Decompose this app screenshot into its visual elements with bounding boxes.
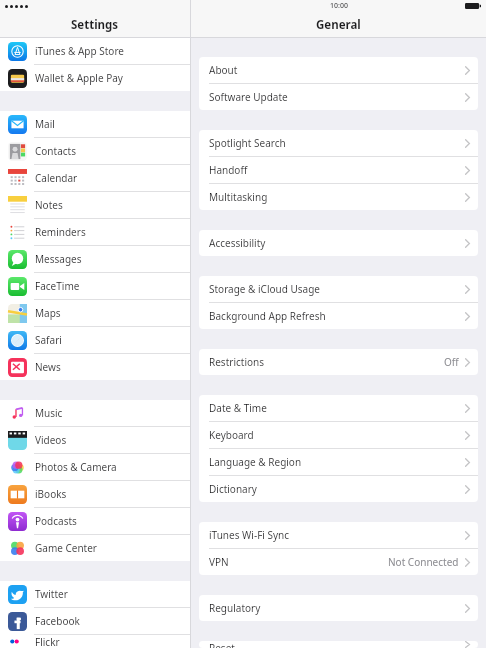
button[interactable]: Mail — [0, 111, 190, 137]
staticText: Podcasts — [35, 514, 77, 528]
button[interactable]: Flickr — [0, 635, 190, 648]
button[interactable]: Spotlight Search — [199, 130, 478, 156]
button[interactable]: Facebook — [0, 608, 190, 634]
button[interactable]: Videos — [0, 427, 190, 453]
staticText: Storage & iCloud Usage — [209, 282, 320, 296]
button[interactable]: VPN — [199, 549, 478, 575]
staticText: Messages — [35, 252, 82, 266]
button[interactable]: About — [199, 57, 478, 83]
button[interactable]: Reset — [199, 641, 478, 648]
staticText: Reminders — [35, 225, 86, 239]
staticText: Contacts — [35, 144, 76, 158]
button[interactable]: Wallet & Apple Pay — [0, 65, 190, 91]
button[interactable]: Calendar — [0, 165, 190, 191]
staticText: Safari — [35, 333, 62, 347]
button[interactable]: iBooks — [0, 481, 190, 507]
button[interactable]: Photos & Camera — [0, 454, 190, 480]
staticText: VPN — [209, 555, 229, 569]
staticText: Photos & Camera — [35, 460, 117, 474]
staticText: Keyboard — [209, 428, 254, 442]
button[interactable]: Twitter — [0, 581, 190, 607]
staticText: Mail — [35, 117, 55, 131]
staticText: Multitasking — [209, 190, 268, 204]
button[interactable]: Restrictions — [199, 349, 478, 375]
staticText: iBooks — [35, 487, 67, 501]
button[interactable]: Notes — [0, 192, 190, 218]
staticText: General — [316, 17, 361, 33]
staticText: 10:00 — [330, 1, 348, 11]
button[interactable]: Reminders — [0, 219, 190, 245]
staticText: Wallet & Apple Pay — [35, 71, 123, 85]
staticText: Spotlight Search — [209, 136, 286, 150]
staticText: Music — [35, 406, 63, 420]
staticText: Twitter — [35, 587, 68, 601]
button[interactable]: Music — [0, 400, 190, 426]
button[interactable]: Language & Region — [199, 449, 478, 475]
button[interactable]: Background App Refresh — [199, 303, 478, 329]
button[interactable]: Game Center — [0, 535, 190, 561]
staticText: Handoff — [209, 163, 248, 177]
staticText: Regulatory — [209, 601, 261, 615]
staticText: Off — [444, 355, 459, 369]
staticText: Notes — [35, 198, 63, 212]
button[interactable]: News — [0, 354, 190, 380]
button[interactable]: Safari — [0, 327, 190, 353]
button[interactable]: iTunes Wi-Fi Sync — [199, 522, 478, 548]
button[interactable]: Accessibility — [199, 230, 478, 256]
button[interactable]: Contacts — [0, 138, 190, 164]
button[interactable]: Messages — [0, 246, 190, 272]
staticText: FaceTime — [35, 279, 80, 293]
button[interactable]: Date & Time — [199, 395, 478, 421]
staticText: Date & Time — [209, 401, 267, 415]
staticText: About — [209, 63, 238, 77]
button[interactable]: Regulatory — [199, 595, 478, 621]
button[interactable]: Maps — [0, 300, 190, 326]
staticText: Maps — [35, 306, 61, 320]
button[interactable]: Dictionary — [199, 476, 478, 502]
staticText: Facebook — [35, 614, 80, 628]
staticText: Settings — [71, 17, 119, 33]
staticText: Flickr — [35, 635, 60, 648]
staticText: News — [35, 360, 61, 374]
staticText: Background App Refresh — [209, 309, 326, 323]
button[interactable]: iTunes & App Store — [0, 38, 190, 64]
staticText: Language & Region — [209, 455, 302, 469]
staticText: Dictionary — [209, 482, 257, 496]
staticText: Reset — [209, 641, 235, 648]
staticText: Not Connected — [388, 555, 459, 569]
button[interactable]: Handoff — [199, 157, 478, 183]
staticText: Calendar — [35, 171, 78, 185]
staticText: Game Center — [35, 541, 97, 555]
button[interactable]: Storage & iCloud Usage — [199, 276, 478, 302]
staticText: iTunes Wi-Fi Sync — [209, 528, 290, 542]
staticText: Videos — [35, 433, 67, 447]
button[interactable]: Multitasking — [199, 184, 478, 210]
button[interactable]: Software Update — [199, 84, 478, 110]
staticText: Accessibility — [209, 236, 266, 250]
button[interactable]: Podcasts — [0, 508, 190, 534]
staticText: Restrictions — [209, 355, 264, 369]
staticText: Software Update — [209, 90, 288, 104]
staticText: iTunes & App Store — [35, 44, 124, 58]
button[interactable]: FaceTime — [0, 273, 190, 299]
button[interactable]: Keyboard — [199, 422, 478, 448]
